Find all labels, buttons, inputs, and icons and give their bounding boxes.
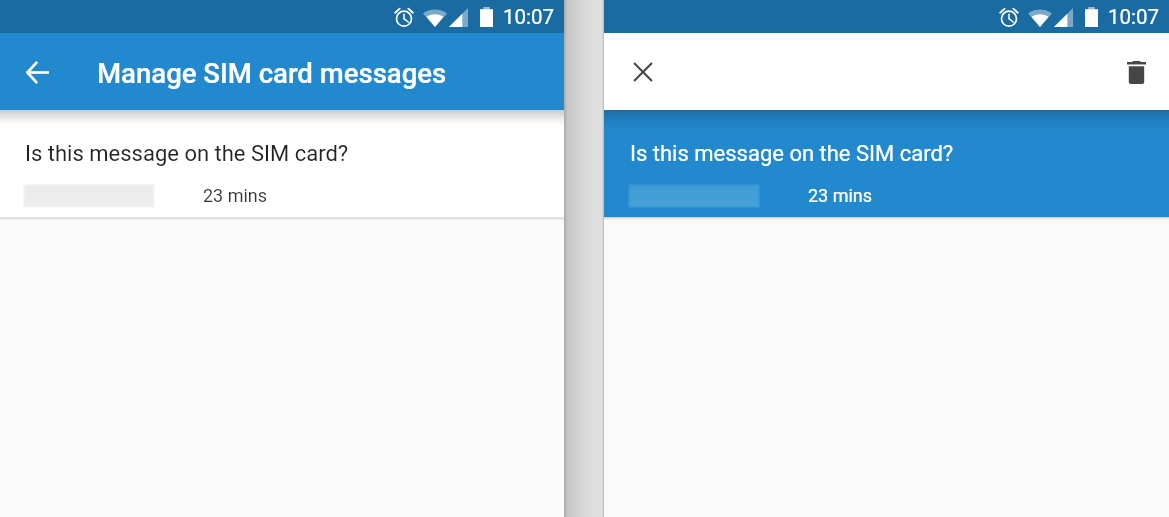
button[interactable]: Navigate up: [14, 49, 60, 95]
button[interactable]: Delete: [1113, 49, 1159, 95]
staticText: Is this message on the SIM card?: [630, 141, 954, 167]
staticText: 23 mins: [808, 185, 873, 206]
staticText: 10:07: [1108, 5, 1160, 29]
button[interactable]: Is this message on the SIM card?: [0, 110, 564, 217]
staticText: 10:07: [503, 5, 555, 29]
button[interactable]: Is this message on the SIM card?: [604, 110, 1169, 217]
staticText: Is this message on the SIM card?: [25, 141, 349, 167]
staticText: Manage SIM card messages: [97, 57, 447, 89]
staticText: 23 mins: [203, 185, 268, 206]
button[interactable]: Close selection: [620, 49, 666, 95]
